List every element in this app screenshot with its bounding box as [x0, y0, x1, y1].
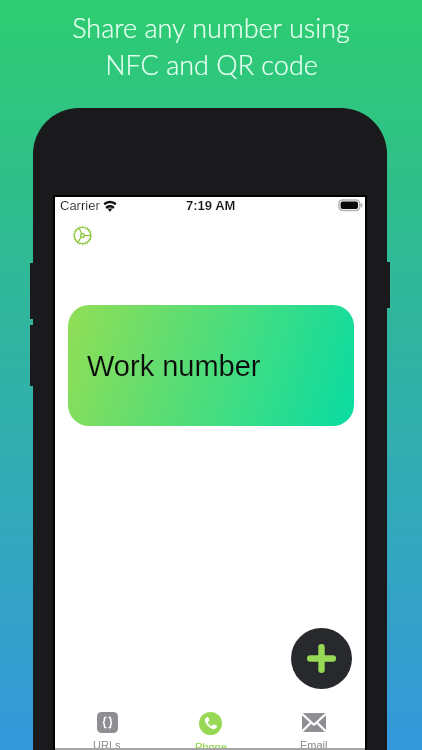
button[interactable]: Phone	[159, 709, 262, 750]
button[interactable]: Settings	[69, 222, 95, 248]
staticText: Email	[300, 739, 328, 750]
staticText: URLs	[93, 739, 121, 750]
button[interactable]: Add number	[291, 628, 352, 689]
staticText: Work number	[87, 350, 261, 382]
button[interactable]: Email	[262, 709, 365, 750]
staticText: Carrier	[60, 198, 100, 213]
staticText: Share any number using	[72, 11, 350, 43]
staticText: NFC and QR code	[105, 48, 318, 80]
staticText: Phone	[195, 741, 227, 750]
staticText: 7:19 AM	[186, 198, 236, 213]
button[interactable]: Work number	[68, 305, 354, 426]
button[interactable]: URLs	[55, 709, 159, 750]
